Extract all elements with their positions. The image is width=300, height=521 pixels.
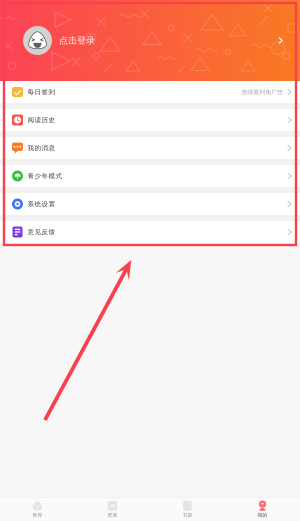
staticText: 更新 xyxy=(107,512,117,518)
button[interactable]: 点击登录 xyxy=(0,0,300,81)
staticText: 连续签到免广告 xyxy=(241,88,283,96)
staticText: 每日签到 xyxy=(27,88,55,96)
staticText: 书架 xyxy=(182,512,192,518)
button[interactable]: 每日签到 xyxy=(0,81,300,103)
staticText: 青少年模式 xyxy=(27,172,62,180)
button[interactable]: 我的消息 xyxy=(0,137,300,159)
button[interactable]: 阅读历史 xyxy=(0,109,300,131)
staticText: 推荐 xyxy=(32,512,42,518)
staticText: 阅读历史 xyxy=(27,116,55,124)
button[interactable]: 我的 xyxy=(225,498,300,521)
staticText: 点击登录 xyxy=(59,35,95,46)
staticText: 系统设置 xyxy=(27,200,55,208)
button[interactable]: 意见反馈 xyxy=(0,221,300,243)
staticText: 意见反馈 xyxy=(27,228,55,236)
button[interactable]: 青少年模式 xyxy=(0,165,300,187)
button[interactable]: 系统设置 xyxy=(0,193,300,215)
button[interactable]: 书架 xyxy=(150,498,225,521)
staticText: 我的消息 xyxy=(27,144,55,152)
button[interactable]: 推荐 xyxy=(0,498,75,521)
button[interactable]: 更新 xyxy=(75,498,150,521)
staticText: 我的 xyxy=(257,512,267,518)
